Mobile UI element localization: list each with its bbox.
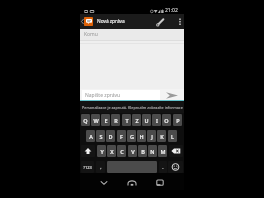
button[interactable]: A <box>86 130 95 142</box>
staticText: Komu <box>84 31 98 38</box>
button[interactable]: Komu <box>80 29 184 40</box>
button[interactable]: Y <box>97 145 106 157</box>
staticText: B <box>141 148 145 155</box>
staticText: S <box>99 133 103 140</box>
button[interactable]: Shift <box>81 145 95 157</box>
button[interactable]: C <box>117 145 126 157</box>
button[interactable]: Navigate up <box>80 14 84 29</box>
button[interactable]: I <box>152 114 161 126</box>
staticText: C <box>120 148 124 155</box>
button[interactable]: . <box>159 161 167 173</box>
button[interactable]: W <box>91 114 100 126</box>
button[interactable]: Personalizace je zapnutá. Klepnutím zobr… <box>80 101 184 113</box>
staticText: G <box>130 133 134 140</box>
button[interactable]: Home <box>124 175 140 191</box>
button[interactable]: N <box>148 145 157 157</box>
button[interactable]: P <box>173 114 182 126</box>
button[interactable]: E <box>101 114 110 126</box>
staticText: X <box>110 148 114 155</box>
button[interactable]: H <box>137 130 146 142</box>
button[interactable]: Recent apps <box>152 175 168 191</box>
button[interactable]: L <box>168 130 177 142</box>
staticText: H <box>139 133 144 140</box>
button[interactable]: U <box>142 114 151 126</box>
staticText: J <box>151 133 153 140</box>
staticText: Napište zprávu <box>85 92 121 99</box>
staticText: . <box>162 164 164 171</box>
staticText: Z <box>135 117 139 124</box>
button[interactable]: J <box>147 130 156 142</box>
button[interactable]: V <box>128 145 137 157</box>
staticText: Q <box>83 117 88 124</box>
staticText: Nová zpráva <box>97 18 125 25</box>
button[interactable]: B <box>138 145 147 157</box>
button[interactable]: T <box>122 114 131 126</box>
staticText: I <box>156 117 158 124</box>
button[interactable]: D <box>106 130 115 142</box>
staticText: F <box>120 133 123 140</box>
staticText: L <box>171 133 174 140</box>
button[interactable]: O <box>162 114 171 126</box>
button[interactable]: S <box>96 130 105 142</box>
button[interactable]: Z <box>132 114 141 126</box>
staticText: W <box>93 117 99 124</box>
staticText: P <box>176 117 180 124</box>
staticText: ?123 <box>83 165 92 170</box>
staticText: U <box>144 117 149 124</box>
button[interactable]: , <box>96 161 105 173</box>
staticText: R <box>114 117 118 124</box>
button[interactable]: Attach <box>153 14 167 29</box>
staticText: O <box>164 117 169 124</box>
staticText: 21:02 <box>165 7 178 14</box>
button[interactable]: X <box>107 145 116 157</box>
staticText: A <box>89 133 93 140</box>
button[interactable]: Backspace <box>169 145 183 157</box>
staticText: K <box>160 133 164 140</box>
staticText: Personalizace je zapnutá. Klepnutím zobr… <box>82 105 183 110</box>
button[interactable]: F <box>117 130 126 142</box>
button[interactable]: Napište zprávu <box>82 90 160 100</box>
button[interactable]: R <box>111 114 120 126</box>
staticText: , <box>100 164 102 171</box>
button[interactable]: Hide keyboard <box>96 175 112 191</box>
button[interactable]: G <box>127 130 136 142</box>
staticText: M <box>160 148 166 155</box>
staticText: E <box>104 117 108 124</box>
button[interactable]: M <box>158 145 167 157</box>
staticText: V <box>131 148 135 155</box>
button[interactable]: Send <box>162 89 182 101</box>
button[interactable]: K <box>157 130 166 142</box>
button[interactable]: Messaging <box>84 17 93 26</box>
button[interactable]: Q <box>81 114 90 126</box>
staticText: D <box>108 133 113 140</box>
staticText: N <box>150 148 155 155</box>
staticText: Y <box>100 148 104 155</box>
button[interactable]: More options <box>175 14 184 29</box>
staticText: T <box>125 117 129 124</box>
button[interactable]: Emoji <box>168 161 183 173</box>
button[interactable]: ?123 <box>81 161 94 173</box>
